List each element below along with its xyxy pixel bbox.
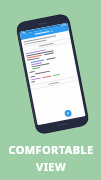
staticText: COMFORTABLE <box>8 142 94 157</box>
other: Phone showing code editor app <box>0 0 101 180</box>
staticText: VIEW <box>36 159 66 174</box>
